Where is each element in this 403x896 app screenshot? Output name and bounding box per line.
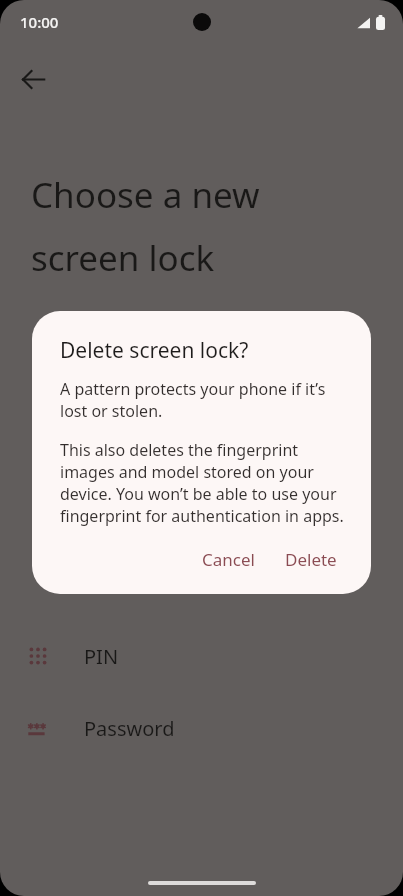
button[interactable]: Delete [273,539,349,580]
staticText: screen lock [31,234,215,282]
staticText: Password [84,715,175,742]
button[interactable]: Cancel [190,539,267,580]
staticText: A pattern protects your phone if it’s lo… [60,378,349,422]
staticText: This also deletes the fingerprint images… [60,439,349,527]
staticText: Cancel [202,548,255,571]
button[interactable]: Password [0,704,403,752]
staticText: Choose a new [31,171,260,219]
staticText: 10:00 [20,12,59,32]
staticText: Delete [285,548,337,571]
staticText: PIN [84,643,119,670]
button[interactable]: PIN [0,632,403,680]
button[interactable]: Back [11,57,55,101]
staticText: Delete screen lock? [60,336,249,365]
